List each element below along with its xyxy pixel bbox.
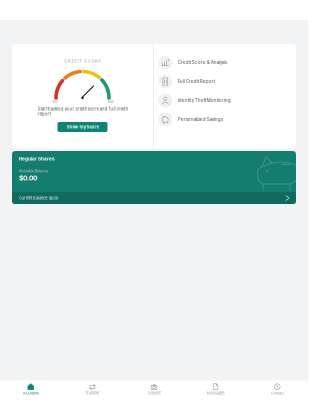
button[interactable]: Current Balance: $0.00: [12, 192, 296, 204]
button[interactable]: Transfer: [62, 380, 123, 400]
staticText: Contact: [271, 391, 284, 395]
staticText: 300: [51, 100, 57, 104]
staticText: Accounts: [23, 391, 39, 395]
button[interactable]: Personalized Savings: [154, 110, 296, 129]
staticText: Messages: [207, 391, 225, 395]
staticText: CREDIT SCORE: [64, 59, 100, 63]
staticText: Show my Score: [66, 124, 98, 129]
button[interactable]: Credit Score & Analysis: [154, 53, 296, 72]
button[interactable]: Identity Theft Monitoring: [154, 91, 296, 110]
button[interactable]: Show my Score: [57, 122, 107, 132]
staticText: Full Credit Report: [178, 79, 215, 84]
staticText: Available Balance: [19, 169, 48, 173]
staticText: $0.00: [19, 174, 37, 182]
button[interactable]: Messages: [185, 380, 246, 400]
staticText: Transfer: [85, 391, 100, 395]
button[interactable]: Deposit: [123, 380, 185, 400]
staticText: Personalized Savings: [178, 117, 223, 122]
staticText: Identity Theft Monitoring: [178, 98, 231, 103]
staticText: Deposit: [147, 391, 160, 395]
button[interactable]: Contact: [246, 380, 308, 400]
button[interactable]: Full Credit Report: [154, 72, 296, 91]
staticText: 850: [107, 100, 113, 104]
staticText: Start tracking your credit score and ful…: [37, 106, 127, 117]
staticText: Current Balance: $0.00: [19, 196, 58, 200]
button[interactable]: Accounts: [0, 380, 62, 400]
staticText: Regular Shares: [19, 156, 55, 162]
staticText: Credit Score & Analysis: [178, 60, 227, 65]
